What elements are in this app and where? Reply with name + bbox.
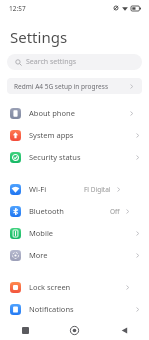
other: Open [134, 306, 141, 313]
button[interactable]: Redmi A4 5G setup in progress [7, 78, 142, 94]
staticText: Lock screen [29, 282, 71, 292]
button[interactable]: Recents [16, 321, 34, 339]
staticText: Bluetooth [29, 206, 64, 216]
other: Open [134, 230, 141, 237]
other: Open [128, 110, 135, 117]
staticText: More connectivity options [29, 250, 81, 260]
other: Open [134, 252, 141, 259]
other: Open [134, 154, 141, 161]
button[interactable]: Lock screen [0, 276, 149, 298]
staticText: Search settings [26, 57, 77, 67]
button[interactable]: Mobile networks [0, 222, 149, 244]
other: Open [124, 284, 131, 291]
other: Open [134, 132, 141, 139]
button[interactable]: System apps updater [0, 124, 149, 146]
staticText: Wi-Fi [29, 184, 47, 194]
staticText: Settings [10, 27, 68, 47]
staticText: Off [110, 207, 120, 216]
button[interactable]: Security status [0, 146, 149, 168]
button[interactable]: Search settings [7, 54, 142, 70]
staticText: Redmi A4 5G setup in progress [14, 82, 128, 91]
staticText: Mobile networks [29, 228, 81, 238]
staticText: System apps updater [29, 130, 81, 140]
button[interactable]: Notifications & status bar [0, 298, 149, 320]
staticText: Fl Digital [84, 185, 111, 194]
staticText: About phone [29, 108, 75, 118]
other: Open [128, 83, 135, 90]
button[interactable]: Bluetooth [0, 200, 149, 222]
button[interactable]: Home [65, 321, 83, 339]
staticText: Security status [29, 152, 81, 162]
staticText: Notifications & status bar [29, 304, 81, 314]
staticText: 12:57 [9, 4, 26, 13]
other: Open [124, 208, 131, 215]
button[interactable]: About phone [0, 102, 149, 124]
other: Open [115, 186, 122, 193]
button[interactable]: Wi-Fi [0, 178, 149, 200]
button[interactable]: Back [115, 321, 133, 339]
button[interactable]: More connectivity options [0, 244, 149, 266]
